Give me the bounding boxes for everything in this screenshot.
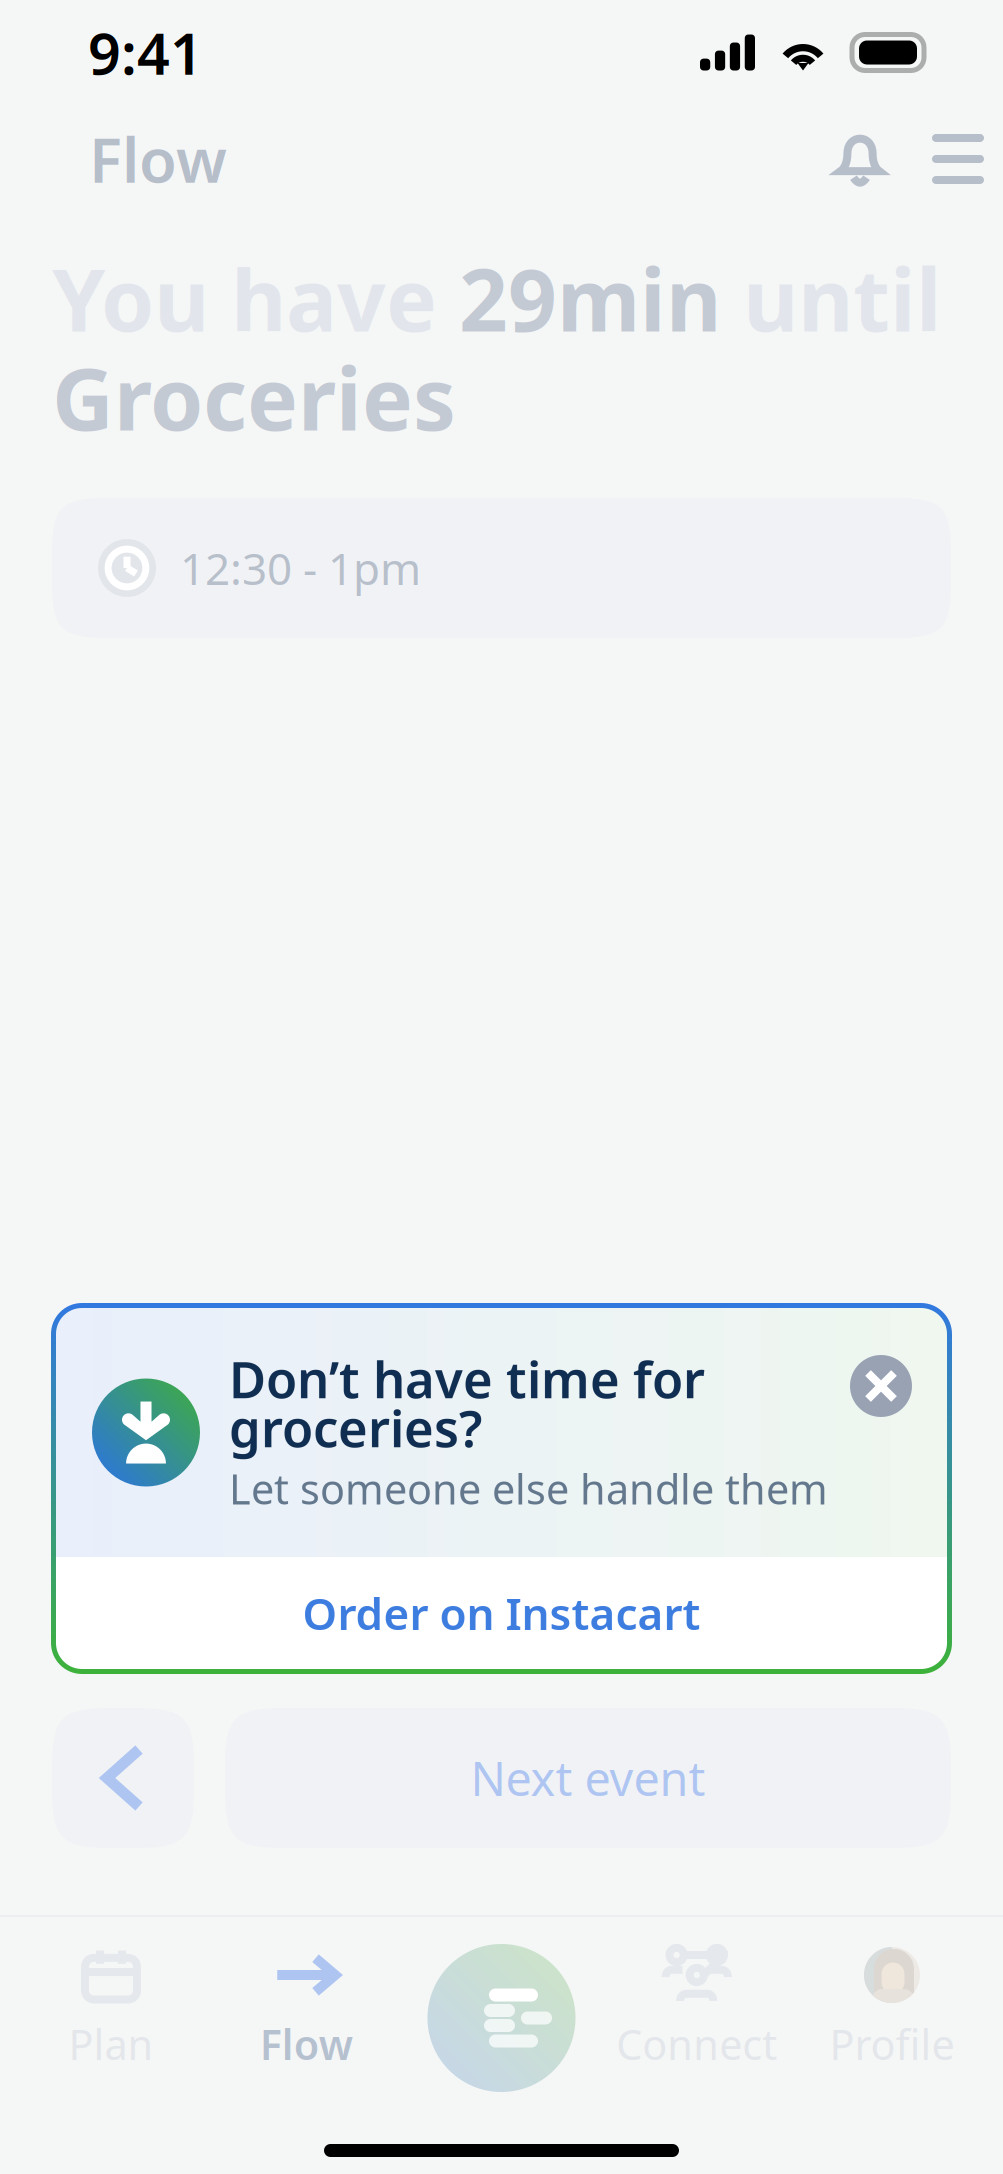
button[interactable]: Plan bbox=[13, 1947, 209, 2069]
button[interactable]: Connect bbox=[599, 1947, 794, 2069]
staticText: until bbox=[721, 242, 941, 355]
staticText: Flow bbox=[260, 2017, 353, 2071]
button[interactable]: Order on Instacart bbox=[56, 1557, 947, 1669]
button[interactable]: Profile bbox=[794, 1947, 990, 2069]
button[interactable]: Flow bbox=[209, 1947, 404, 2069]
staticText: Let someone else handle them bbox=[229, 1461, 828, 1516]
staticText: Order on Instacart bbox=[302, 1584, 700, 1642]
staticText: Profile bbox=[829, 2017, 954, 2071]
staticText: Groceries bbox=[52, 341, 456, 454]
button[interactable]: Notifications bbox=[808, 105, 912, 213]
staticText: Plan bbox=[68, 2017, 153, 2071]
staticText: Flow bbox=[89, 118, 227, 200]
button[interactable]: Dismiss bbox=[838, 1343, 924, 1429]
staticText: 12:30 - 1pm bbox=[180, 539, 421, 597]
staticText: groceries? bbox=[229, 1394, 482, 1461]
staticText: Connect bbox=[616, 2017, 777, 2071]
staticText: You have bbox=[52, 242, 459, 355]
button[interactable]: New flow bbox=[427, 1944, 575, 2092]
button[interactable]: Previous event bbox=[52, 1708, 194, 1848]
staticText: 9:41 bbox=[88, 14, 203, 90]
staticText: Next event bbox=[470, 1747, 705, 1809]
button[interactable]: Next event bbox=[225, 1708, 951, 1848]
staticText: Don’t have time for bbox=[229, 1345, 705, 1412]
button[interactable]: Menu bbox=[912, 105, 1003, 213]
staticText: 29min bbox=[459, 242, 721, 355]
